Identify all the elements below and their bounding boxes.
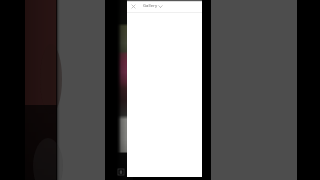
staticText: Gallery — [143, 3, 158, 9]
button[interactable]: Gallery — [142, 2, 164, 10]
button[interactable]: Close — [127, 0, 139, 12]
button[interactable]: Recent photo — [118, 169, 124, 175]
